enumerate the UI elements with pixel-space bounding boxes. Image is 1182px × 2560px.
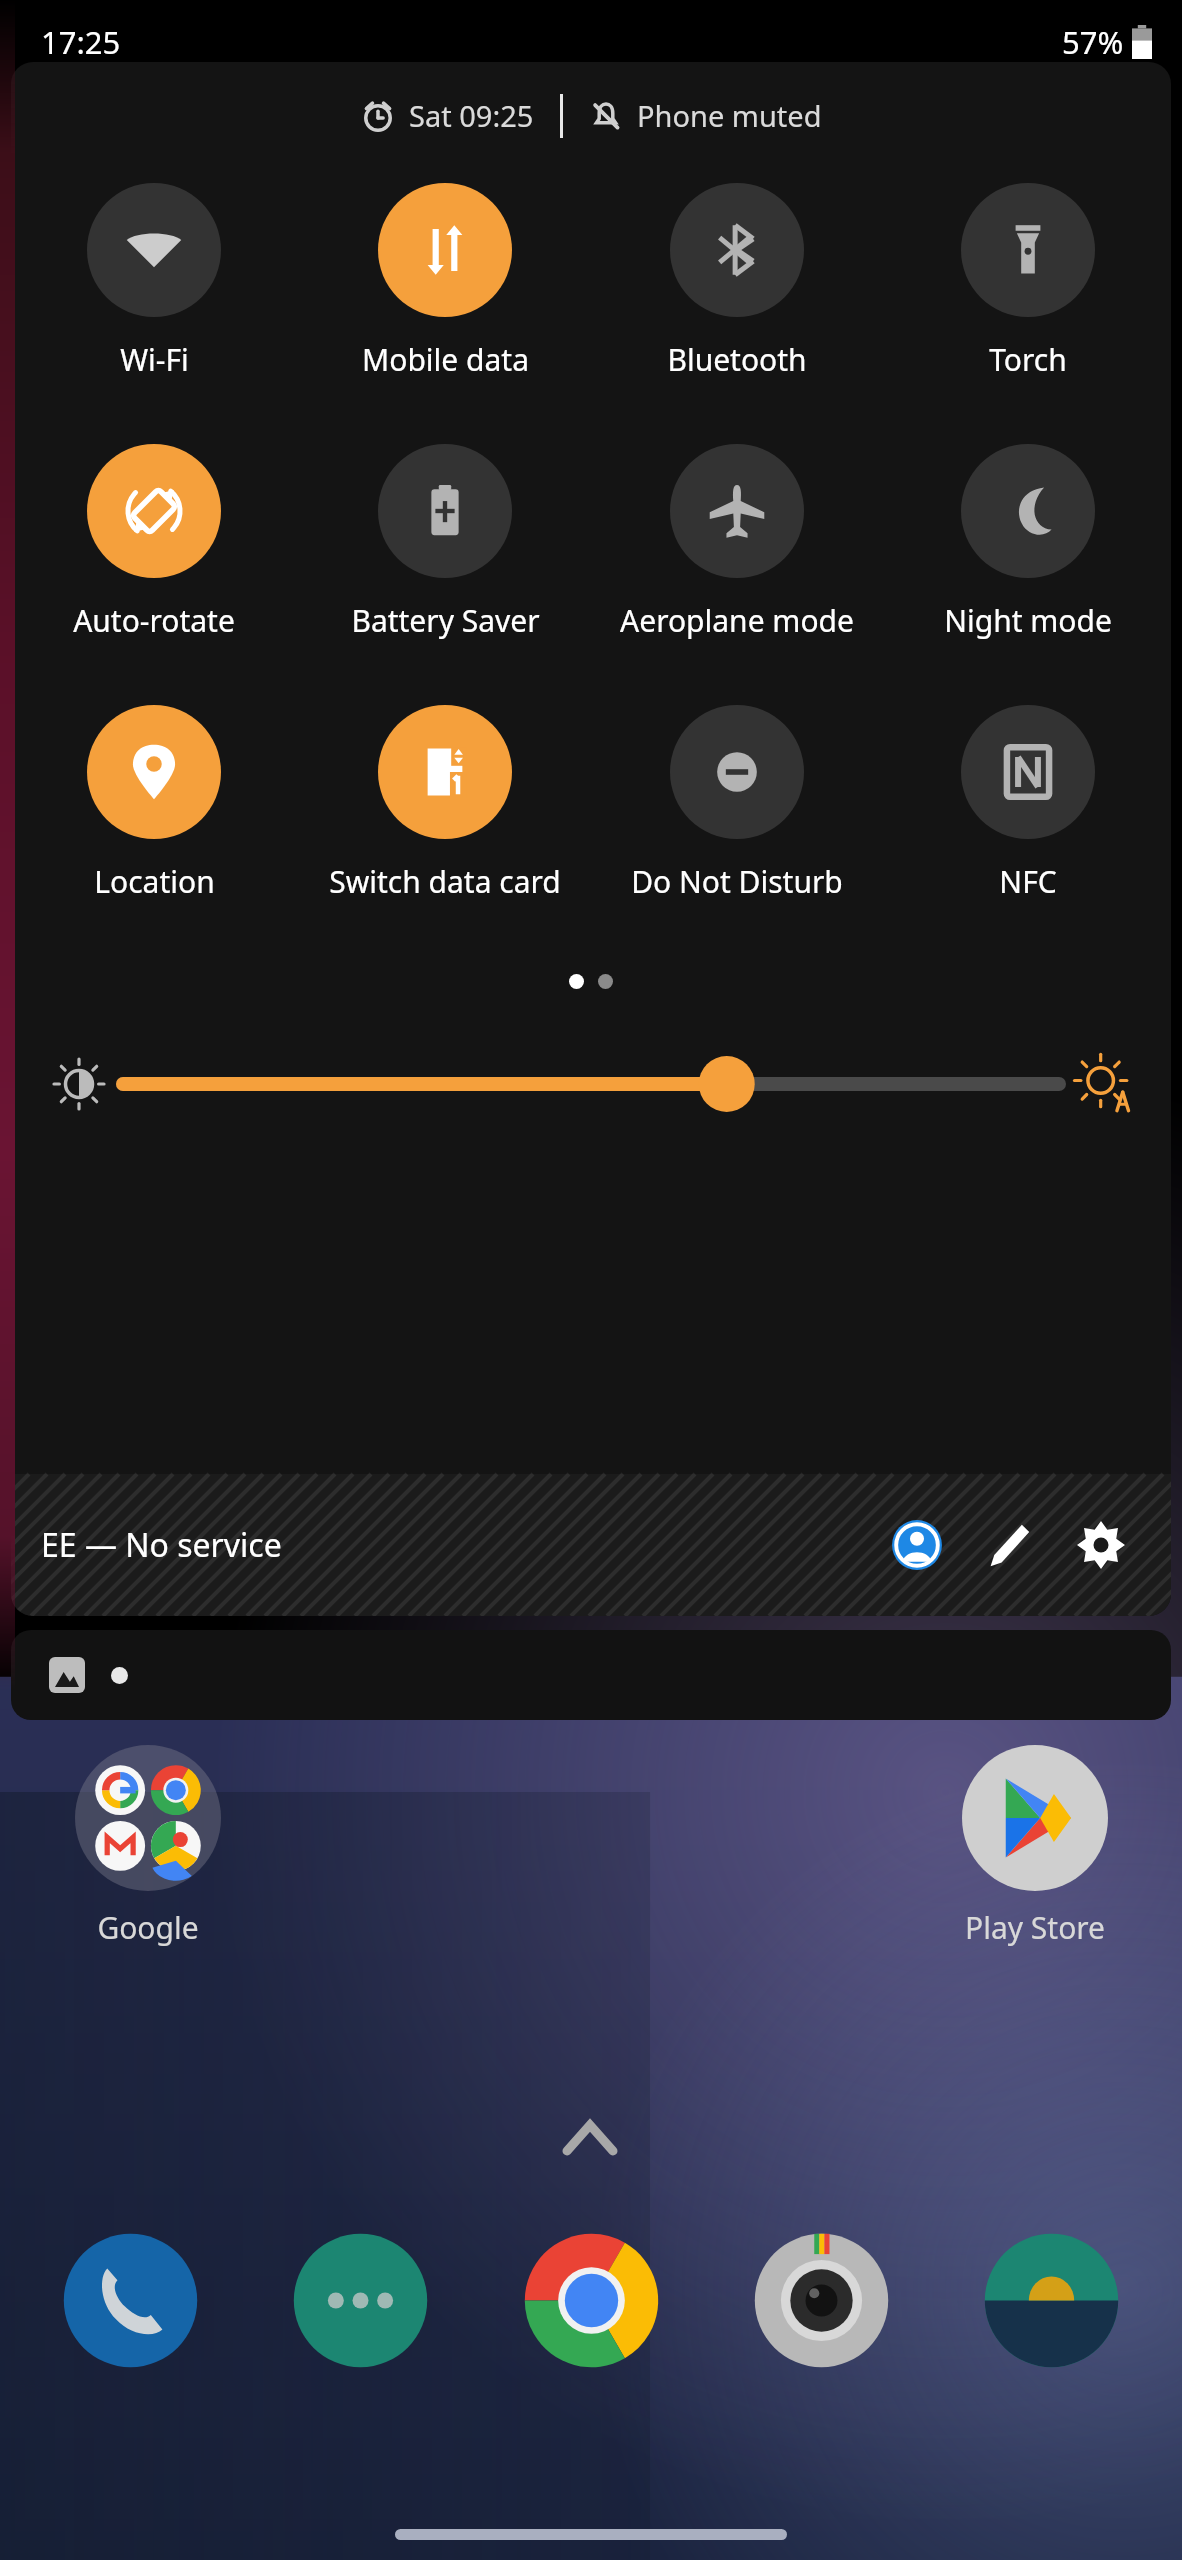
button[interactable]: Mobile data xyxy=(320,183,570,380)
staticText: 57% xyxy=(1062,21,1124,63)
button[interactable]: Brightness xyxy=(123,1044,1059,1124)
staticText: Sat 09:25 xyxy=(409,96,534,135)
staticText: Google xyxy=(97,1907,199,1948)
staticText: Night mode xyxy=(944,600,1112,641)
staticText: Auto-rotate xyxy=(73,600,235,641)
button[interactable]: Settings xyxy=(1055,1499,1147,1591)
staticText: Torch xyxy=(989,339,1067,380)
button[interactable]: Chrome xyxy=(519,2228,664,2373)
staticText: Mobile data xyxy=(362,339,529,380)
button[interactable]: Sat 09:25 xyxy=(357,90,538,141)
staticText: 17:25 xyxy=(41,21,121,63)
staticText: Phone muted xyxy=(637,96,822,135)
button[interactable]: Auto brightness xyxy=(1059,1040,1147,1128)
button[interactable]: Phone muted xyxy=(585,90,826,141)
staticText: Battery Saver xyxy=(351,600,540,641)
button[interactable]: User account xyxy=(871,1499,963,1591)
button[interactable]: Phone xyxy=(58,2228,203,2373)
button[interactable]: Wi-Fi xyxy=(29,183,279,380)
button[interactable]: Play Store xyxy=(962,1745,1108,1948)
button[interactable]: Battery Saver xyxy=(320,444,570,641)
button[interactable]: Bluetooth xyxy=(612,183,862,380)
staticText: Aeroplane mode xyxy=(620,600,854,641)
button[interactable]: Aeroplane mode xyxy=(612,444,862,641)
staticText: Bluetooth xyxy=(667,339,807,380)
staticText: EE — No service xyxy=(41,1523,282,1567)
button[interactable]: Torch xyxy=(903,183,1153,380)
staticText: Switch data card xyxy=(329,861,561,902)
button[interactable]: Open app drawer xyxy=(544,2092,636,2184)
button[interactable]: Decrease brightness xyxy=(35,1040,123,1128)
button[interactable]: Camera xyxy=(749,2228,894,2373)
staticText: Do Not Disturb xyxy=(631,861,843,902)
button[interactable]: Edit tiles xyxy=(963,1499,1055,1591)
button[interactable]: Google xyxy=(75,1745,221,1948)
button[interactable]: Do Not Disturb xyxy=(612,705,862,902)
button[interactable]: Auto-rotate xyxy=(29,444,279,641)
staticText: Wi-Fi xyxy=(120,339,189,380)
button[interactable]: NFC xyxy=(903,705,1153,902)
button[interactable]: Weather xyxy=(979,2228,1124,2373)
button[interactable] xyxy=(11,1630,1171,1720)
staticText: Location xyxy=(94,861,215,902)
button[interactable]: Location xyxy=(29,705,279,902)
button[interactable]: Night mode xyxy=(903,444,1153,641)
button[interactable]: Messages xyxy=(288,2228,433,2373)
staticText: Play Store xyxy=(965,1907,1105,1948)
staticText: NFC xyxy=(999,861,1057,902)
button[interactable]: Switch data card xyxy=(320,705,570,902)
